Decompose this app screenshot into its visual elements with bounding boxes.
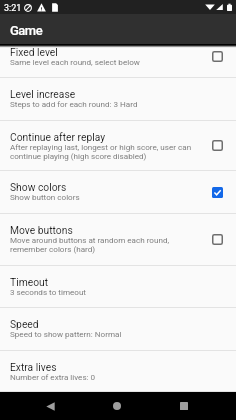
button[interactable]: Extra lives	[0, 351, 236, 391]
button[interactable]: Home	[103, 392, 131, 420]
staticText: Speed to show pattern: Normal	[10, 330, 122, 339]
button[interactable]: Level increase	[0, 78, 236, 120]
button[interactable]: Show colors	[0, 171, 236, 213]
button[interactable]: Recent apps	[170, 392, 198, 420]
staticText: Continue after replay	[10, 131, 106, 143]
button[interactable]: Continue after replay	[212, 140, 223, 151]
button[interactable]: Fixed level	[212, 51, 223, 62]
button[interactable]: Fixed level	[0, 44, 236, 77]
staticText: Steps to add for each round: 3 Hard	[10, 100, 138, 109]
staticText: Extra lives	[10, 361, 57, 373]
staticText: Fixed level	[10, 46, 58, 58]
staticText: Number of extra lives: 0	[10, 373, 96, 382]
staticText: Game	[10, 23, 43, 38]
staticText: Move around buttons at random each round…	[10, 236, 206, 254]
staticText: 3 seconds to timeout	[10, 288, 87, 297]
staticText: 3:21	[4, 3, 22, 14]
staticText: Level increase	[10, 88, 76, 100]
button[interactable]: Timeout	[0, 266, 236, 307]
button[interactable]: Back	[36, 392, 64, 420]
staticText: Same level each round, select below	[10, 58, 140, 67]
button[interactable]: Show colors	[212, 187, 223, 198]
button[interactable]: Continue after replay	[0, 121, 236, 170]
button[interactable]: Speed	[0, 308, 236, 350]
staticText: Show colors	[10, 181, 67, 193]
staticText: Timeout	[10, 276, 49, 288]
staticText: Move buttons	[10, 224, 73, 236]
button[interactable]: Move buttons	[0, 214, 236, 265]
staticText: After replaying last, longest or high sc…	[10, 143, 206, 161]
button[interactable]: Move buttons	[212, 234, 223, 245]
staticText: Speed	[10, 318, 39, 330]
staticText: Show button colors	[10, 193, 80, 202]
button[interactable]: Game	[0, 14, 236, 44]
